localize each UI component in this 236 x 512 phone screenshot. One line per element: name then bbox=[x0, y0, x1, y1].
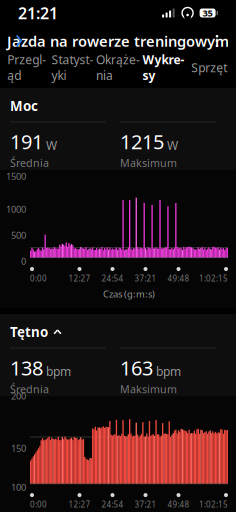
button[interactable]: Wykresy bbox=[141, 56, 186, 84]
staticText: 100 bbox=[11, 481, 26, 493]
staticText: Średnia bbox=[10, 156, 49, 170]
staticText: 138 bbox=[10, 354, 43, 381]
staticText: 12:27 bbox=[68, 499, 90, 510]
staticText: 191 bbox=[10, 128, 43, 155]
button[interactable]: Okrążenia bbox=[95, 56, 141, 84]
button[interactable]: More options bbox=[202, 27, 232, 55]
staticText: 500 bbox=[11, 229, 26, 241]
staticText: 1215 bbox=[120, 128, 164, 155]
staticText: 35 bbox=[203, 7, 213, 19]
staticText: 0:00 bbox=[30, 273, 47, 284]
staticText: 24:54 bbox=[101, 273, 123, 284]
button[interactable]: Sprzęt bbox=[186, 56, 232, 84]
staticText: Maksimum bbox=[120, 156, 177, 170]
staticText: 37:21 bbox=[134, 499, 156, 510]
staticText: Przegląd bbox=[7, 52, 46, 83]
staticText: 49:48 bbox=[167, 273, 189, 284]
staticText: Jazda na rowerze treningowym bbox=[7, 31, 229, 51]
staticText: Maksimum bbox=[120, 382, 177, 396]
staticText: 0 bbox=[21, 255, 26, 267]
staticText: Statystyki bbox=[51, 52, 93, 83]
staticText: 200 bbox=[11, 390, 26, 402]
staticText: W bbox=[167, 137, 178, 153]
button[interactable]: Przegląd bbox=[4, 56, 50, 84]
staticText: Okrążenia bbox=[96, 52, 140, 83]
staticText: 21:21 bbox=[18, 2, 58, 24]
button[interactable]: Back bbox=[4, 27, 34, 55]
staticText: 150 bbox=[11, 442, 26, 454]
staticText: Moc bbox=[10, 97, 38, 115]
staticText: W bbox=[46, 137, 57, 153]
staticText: 1:02:15 bbox=[199, 499, 228, 510]
staticText: Wykresy bbox=[143, 52, 185, 83]
staticText: Tętno bbox=[10, 323, 48, 341]
button[interactable]: Tętno bbox=[0, 314, 236, 341]
staticText: Średnia bbox=[10, 382, 49, 396]
button[interactable]: Statystyki bbox=[50, 56, 95, 84]
staticText: 0:00 bbox=[30, 499, 47, 510]
staticText: 1:02:15 bbox=[199, 273, 228, 284]
staticText: 37:21 bbox=[134, 273, 156, 284]
staticText: 1000 bbox=[6, 203, 26, 215]
staticText: bpm bbox=[46, 363, 71, 379]
staticText: 49:48 bbox=[167, 499, 189, 510]
staticText: 163 bbox=[120, 354, 153, 381]
staticText: bpm bbox=[156, 363, 181, 379]
staticText: 1500 bbox=[6, 170, 26, 182]
staticText: Czas (g:m:s) bbox=[103, 288, 155, 300]
staticText: Sprzęt bbox=[191, 59, 227, 75]
staticText: 12:27 bbox=[68, 273, 90, 284]
staticText: 24:54 bbox=[101, 499, 123, 510]
